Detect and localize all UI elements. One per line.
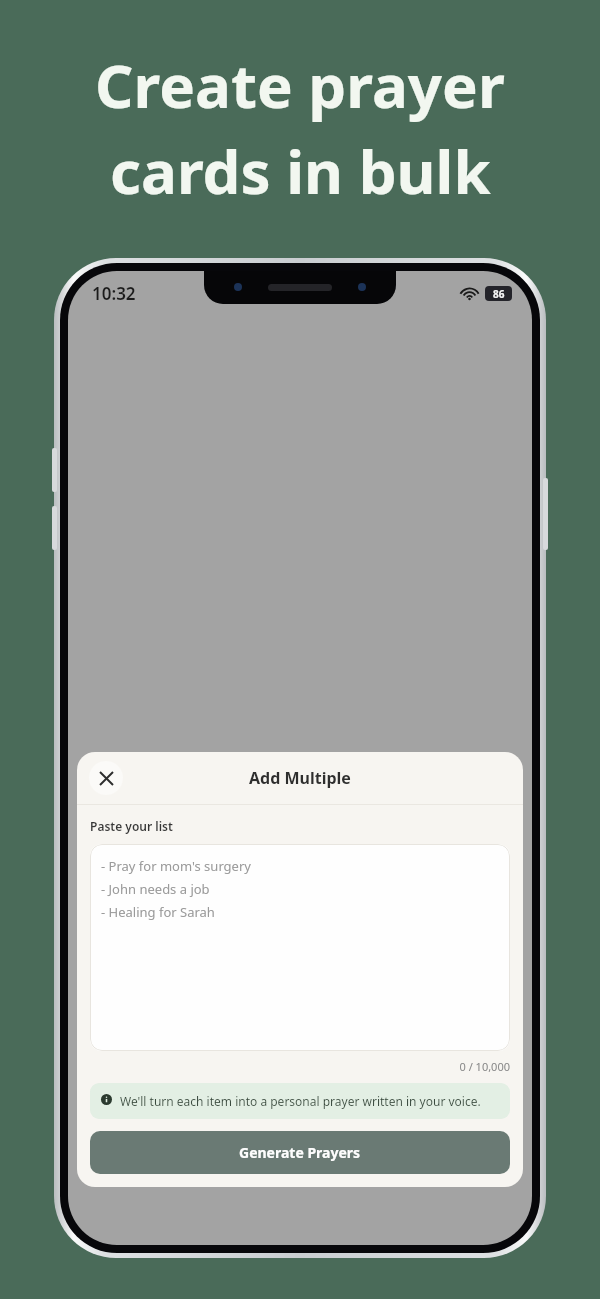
staticText: Add Multiple: [249, 767, 351, 789]
button[interactable]: - Pray for mom's surgery: [90, 844, 510, 1051]
staticText: Generate Prayers: [239, 1143, 361, 1162]
staticText: - Pray for mom's surgery: [101, 857, 251, 875]
other: Wi-Fi: [461, 287, 478, 300]
staticText: 10:32: [92, 282, 136, 305]
staticText: cards in bulk: [110, 130, 491, 212]
staticText: 0 / 10,000: [90, 1059, 510, 1074]
staticText: - Healing for Sarah: [101, 903, 215, 921]
staticText: Create prayer: [95, 44, 505, 126]
button[interactable]: Generate Prayers: [90, 1131, 510, 1174]
staticText: - John needs a job: [101, 880, 210, 898]
button[interactable]: Close: [89, 761, 123, 795]
staticText: We'll turn each item into a personal pra…: [120, 1093, 481, 1109]
staticText: Paste your list: [90, 818, 173, 834]
staticText: 86: [493, 287, 505, 301]
